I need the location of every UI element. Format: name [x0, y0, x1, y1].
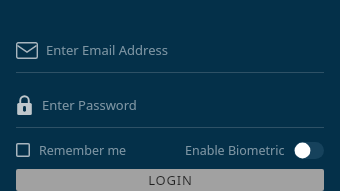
button[interactable]: Email [16, 36, 324, 64]
button[interactable]: Password [16, 91, 324, 119]
other: Remember me checkbox [16, 143, 30, 157]
button[interactable]: LOGIN [16, 169, 324, 191]
button[interactable]: Enable Biometric [185, 137, 324, 163]
staticText: LOGIN [148, 171, 193, 189]
staticText: Remember me [39, 142, 127, 159]
other: Email [16, 42, 38, 59]
button[interactable]: Remember me checkbox [16, 137, 127, 163]
staticText: Enter Email Address [46, 41, 168, 59]
other: Password [16, 95, 33, 115]
staticText: Enable Biometric [185, 142, 285, 159]
other: Enable Biometric toggle [294, 142, 324, 159]
staticText: Enter Password [42, 96, 137, 114]
